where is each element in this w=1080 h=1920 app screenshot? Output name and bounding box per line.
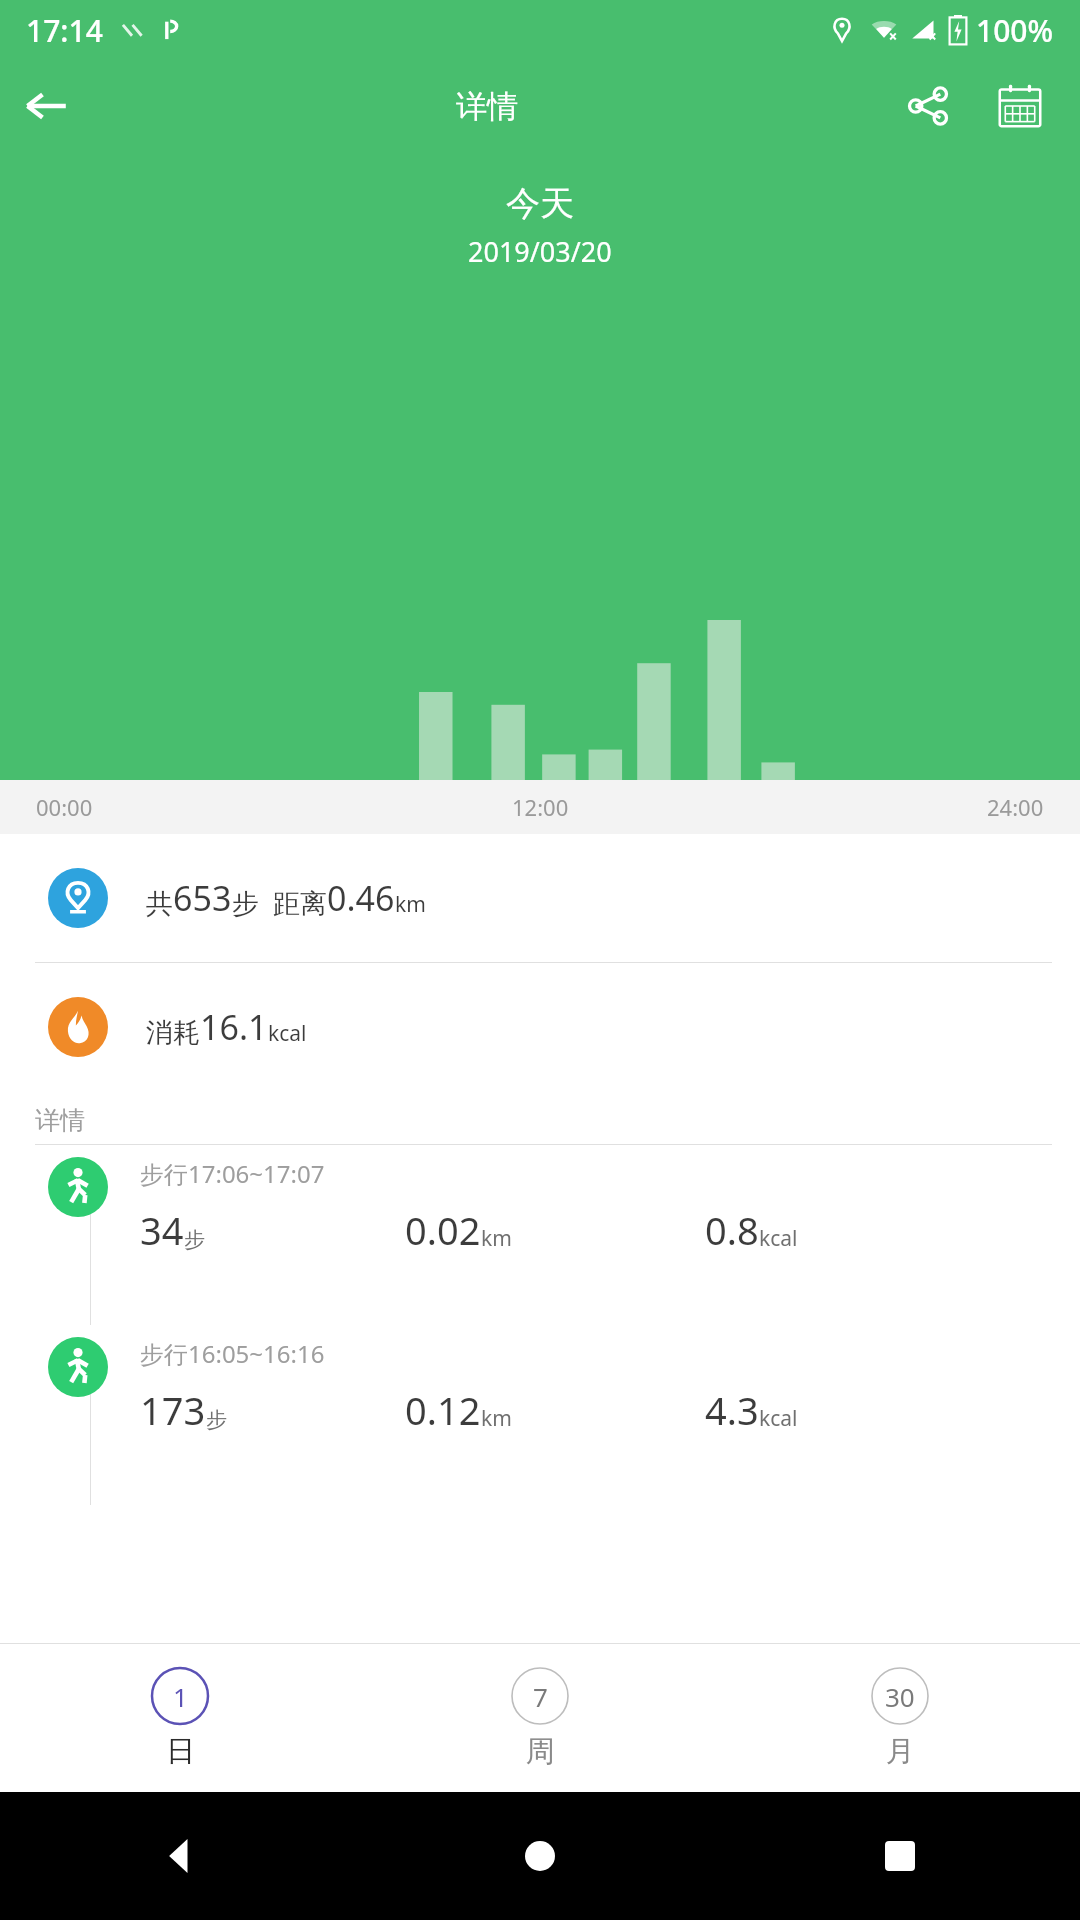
button[interactable]: 步行16:05~16:16 [0, 1325, 1080, 1505]
staticText: kcal [759, 1404, 798, 1433]
staticText: 步 [232, 887, 259, 921]
button[interactable]: 步行17:06~17:07 [0, 1145, 1080, 1325]
staticText: 共 [146, 887, 173, 921]
staticText: 0.8 [705, 1204, 759, 1256]
staticText: 详情 [456, 87, 518, 126]
button[interactable]: 共 [0, 834, 1080, 962]
staticText: kcal [759, 1224, 798, 1253]
staticText: 月 [886, 1733, 915, 1770]
staticText: 距离 [273, 887, 327, 921]
staticText: 步行17:06~17:07 [140, 1157, 325, 1190]
staticText: 日 [166, 1733, 195, 1770]
button[interactable]: Calendar [974, 60, 1066, 152]
staticText: 00:00 [36, 792, 93, 822]
staticText: 4.3 [705, 1384, 759, 1436]
button[interactable]: Back [0, 1792, 360, 1920]
staticText: 2019/03/20 [468, 233, 612, 270]
staticText: 消耗 [146, 1016, 200, 1050]
button[interactable]: Recents [720, 1792, 1080, 1920]
staticText: 1 [173, 1679, 188, 1714]
staticText: 34 [140, 1204, 184, 1256]
button[interactable]: Back [0, 60, 92, 152]
staticText: 0.02 [405, 1204, 481, 1256]
button[interactable]: Share [882, 60, 974, 152]
staticText: 步 [184, 1227, 205, 1253]
staticText: 步行16:05~16:16 [140, 1337, 325, 1370]
staticText: 今天 [506, 182, 574, 225]
staticText: 步 [206, 1407, 227, 1433]
button[interactable]: 1 [0, 1644, 360, 1792]
staticText: 173 [140, 1384, 206, 1436]
staticText: 12:00 [512, 792, 569, 822]
button[interactable]: Home [360, 1792, 720, 1920]
staticText: 0.46 [327, 875, 395, 921]
staticText: kcal [268, 1019, 307, 1048]
button[interactable]: 7 [360, 1644, 720, 1792]
staticText: 100% [976, 10, 1054, 51]
staticText: 30 [885, 1679, 915, 1714]
staticText: km [481, 1224, 512, 1253]
staticText: 653 [173, 875, 232, 921]
staticText: 17:14 [26, 10, 103, 51]
staticText: km [395, 890, 426, 919]
staticText: 24:00 [987, 792, 1044, 822]
button[interactable]: 消耗 [0, 963, 1080, 1091]
staticText: 周 [526, 1733, 555, 1770]
button[interactable]: 30 [720, 1644, 1080, 1792]
staticText: 7 [533, 1679, 548, 1714]
staticText: 详情 [35, 1105, 85, 1136]
staticText: 16.1 [200, 1004, 268, 1050]
staticText: 0.12 [405, 1384, 481, 1436]
staticText: km [481, 1404, 512, 1433]
